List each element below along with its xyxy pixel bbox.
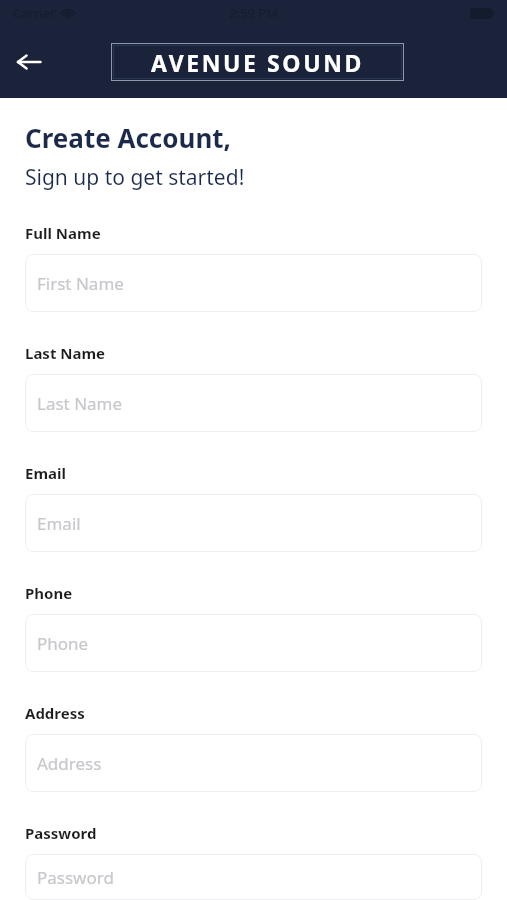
button[interactable]: Password: [25, 854, 482, 900]
button[interactable]: AVENUE SOUND: [113, 45, 402, 79]
button[interactable]: Phone: [25, 614, 482, 672]
staticText: Password: [25, 823, 97, 843]
staticText: Email: [25, 463, 66, 483]
button[interactable]: Last Name: [25, 374, 482, 432]
staticText: Sign up to get started!: [25, 163, 245, 192]
staticText: Password: [37, 866, 114, 889]
staticText: Phone: [25, 583, 73, 603]
staticText: Email: [37, 512, 81, 535]
staticText: Address: [25, 703, 85, 723]
staticText: Phone: [37, 632, 89, 655]
button[interactable]: Email: [25, 494, 482, 552]
staticText: 2:59 PM: [229, 4, 278, 22]
button[interactable]: Back: [9, 42, 49, 82]
staticText: Create Account,: [25, 120, 232, 155]
staticText: Address: [37, 752, 102, 775]
button[interactable]: First Name: [25, 254, 482, 312]
staticText: Carrier: [13, 4, 56, 22]
staticText: AVENUE SOUND: [151, 47, 364, 78]
staticText: Last Name: [37, 392, 123, 415]
staticText: Last Name: [25, 343, 106, 363]
button[interactable]: Address: [25, 734, 482, 792]
staticText: First Name: [37, 272, 124, 295]
staticText: Full Name: [25, 223, 101, 243]
